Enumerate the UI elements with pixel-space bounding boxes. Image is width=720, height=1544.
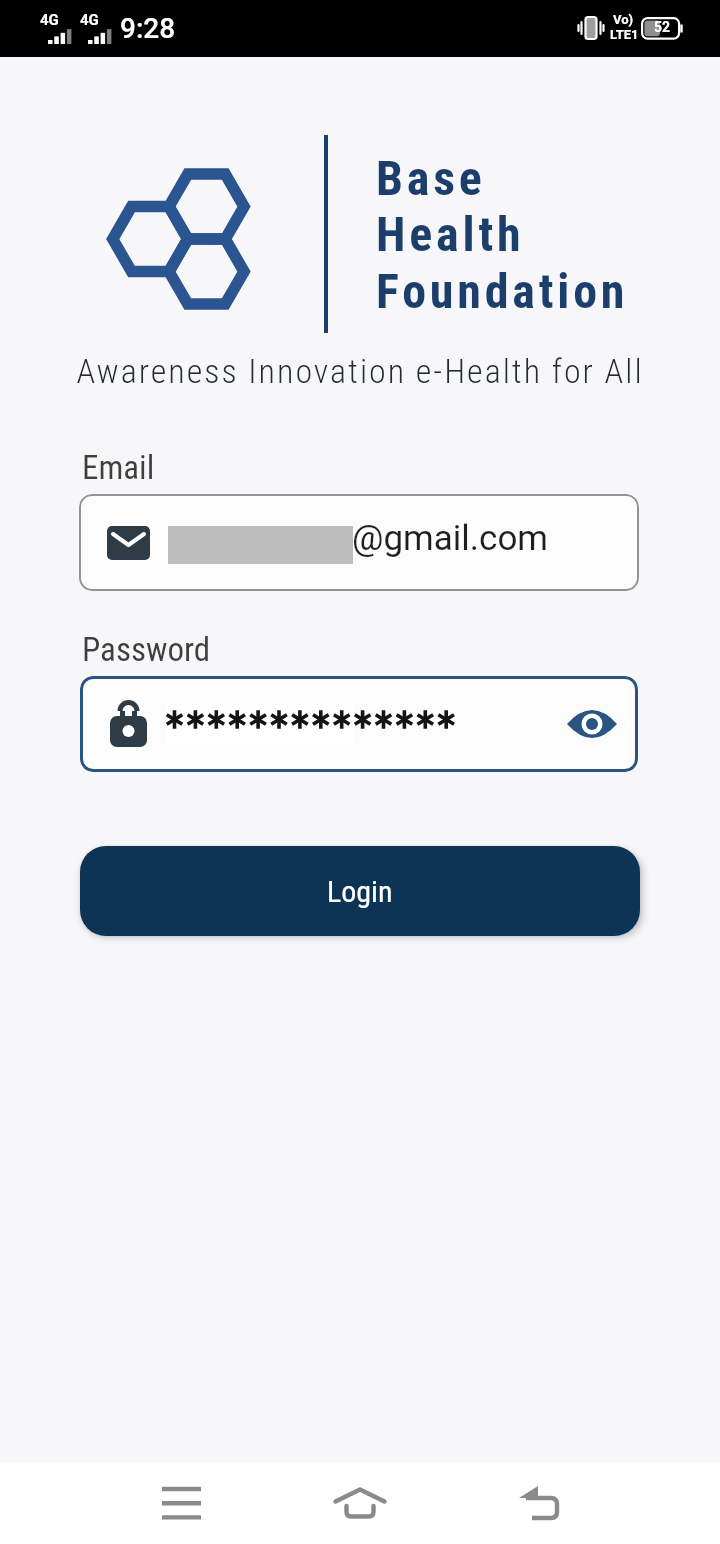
staticText: 4G bbox=[40, 11, 59, 29]
staticText: Login bbox=[327, 874, 393, 909]
staticText: LTE1 bbox=[610, 27, 639, 42]
staticText: Base bbox=[376, 150, 486, 206]
button[interactable] bbox=[567, 702, 617, 746]
staticText: Health bbox=[376, 206, 525, 262]
button[interactable] bbox=[310, 1462, 410, 1544]
staticText: Vo) bbox=[613, 12, 634, 27]
button[interactable] bbox=[80, 676, 638, 772]
staticText: Password bbox=[82, 630, 211, 669]
button[interactable] bbox=[490, 1462, 590, 1544]
staticText: Foundation bbox=[376, 263, 629, 319]
button[interactable]: @gmail.com bbox=[79, 494, 639, 591]
staticText: @gmail.com bbox=[352, 518, 549, 559]
staticText: Awareness Innovation e-Health for All bbox=[0, 351, 720, 391]
staticText: 52 bbox=[654, 19, 671, 35]
staticText: 9:28 bbox=[120, 12, 176, 45]
button[interactable] bbox=[131, 1462, 231, 1544]
staticText: Email bbox=[82, 448, 155, 487]
button[interactable]: Login bbox=[80, 846, 640, 936]
staticText: 4G bbox=[80, 11, 99, 29]
